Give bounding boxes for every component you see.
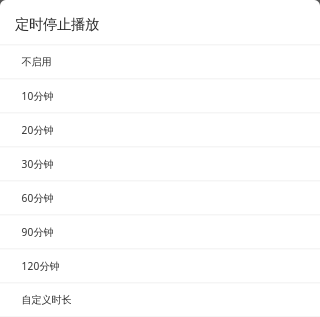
button[interactable]: 10分钟 [0,80,320,112]
staticText: 自定义时长 [21,294,71,306]
staticText: 30分钟 [21,157,53,171]
button[interactable]: 30分钟 [0,148,320,180]
staticText: 60分钟 [21,191,53,205]
button[interactable]: 120分钟 [0,250,320,282]
staticText: 20分钟 [21,123,53,137]
button[interactable]: 20分钟 [0,114,320,146]
button[interactable]: 90分钟 [0,216,320,248]
staticText: 不启用 [21,56,51,68]
button[interactable]: 不启用 [0,46,320,78]
staticText: 90分钟 [21,225,53,239]
staticText: 定时停止播放 [15,15,99,33]
staticText: 120分钟 [21,259,59,273]
button[interactable]: 60分钟 [0,182,320,214]
button[interactable]: 自定义时长 [0,284,320,316]
staticText: 10分钟 [21,89,53,103]
